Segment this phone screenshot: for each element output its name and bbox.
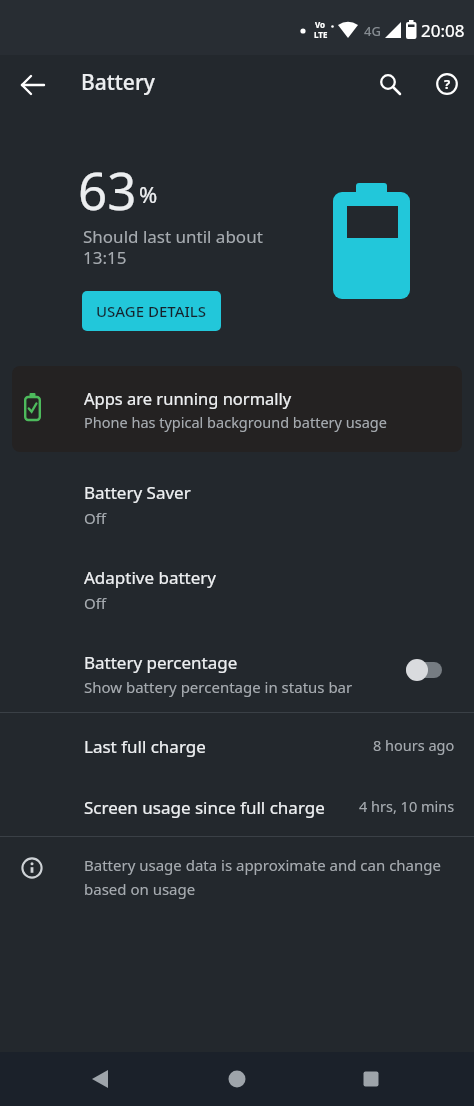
button[interactable]: Adaptive battery <box>0 547 474 632</box>
button[interactable]: Battery percentage <box>0 632 474 717</box>
staticText: Battery usage data is approximate and ca… <box>84 855 441 899</box>
staticText: Show battery percentage in status bar <box>84 677 353 697</box>
staticText: 20:08 <box>421 19 465 42</box>
button[interactable]: Apps are running normally <box>12 366 462 452</box>
button[interactable] <box>207 1052 267 1106</box>
button[interactable]: ? <box>425 63 469 107</box>
button[interactable] <box>11 63 55 107</box>
staticText: LTE <box>314 29 328 40</box>
staticText: Should last until about 13:15 <box>83 225 263 269</box>
button[interactable]: Battery Saver <box>0 462 474 547</box>
staticText: Battery <box>81 68 155 97</box>
staticText: Battery Saver <box>84 481 191 504</box>
staticText: 4 hrs, 10 mins <box>359 796 455 816</box>
staticText: Screen usage since full charge <box>84 796 325 819</box>
staticText: Apps are running normally <box>84 387 292 409</box>
staticText: Phone has typical background battery usa… <box>84 412 387 432</box>
button[interactable] <box>70 1052 130 1106</box>
staticText: Off <box>84 593 107 613</box>
staticText: Last full charge <box>84 735 206 758</box>
button[interactable] <box>398 654 450 694</box>
staticText: Battery percentage <box>84 651 238 674</box>
staticText: Vo <box>315 19 326 30</box>
staticText: 63 <box>78 155 137 224</box>
button[interactable] <box>368 63 412 107</box>
staticText: 4G <box>364 22 381 40</box>
staticText: Adaptive battery <box>84 566 217 589</box>
staticText: USAGE DETAILS <box>96 301 207 321</box>
button[interactable]: Screen usage since full charge <box>0 776 474 836</box>
button[interactable]: USAGE DETAILS <box>82 291 221 331</box>
staticText: Off <box>84 508 107 528</box>
staticText: % <box>139 179 158 209</box>
button[interactable]: Last full charge <box>0 715 474 775</box>
staticText: 8 hours ago <box>373 735 455 755</box>
button[interactable] <box>341 1052 401 1106</box>
staticText: ? <box>444 75 451 93</box>
